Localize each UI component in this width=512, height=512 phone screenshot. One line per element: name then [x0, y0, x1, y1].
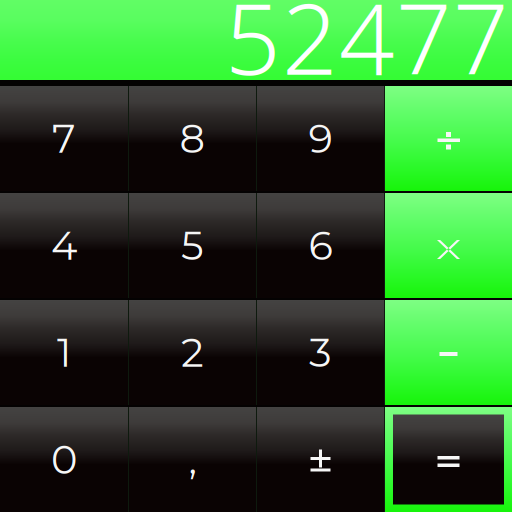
- button[interactable]: Plus minus: [257, 407, 384, 512]
- button[interactable]: 6: [257, 193, 384, 298]
- staticText: 52477: [225, 0, 509, 102]
- staticText: 7: [52, 114, 76, 163]
- staticText: 5: [181, 221, 204, 270]
- staticText: 2: [181, 328, 204, 377]
- button[interactable]: 3: [257, 300, 384, 405]
- staticText: 9: [308, 114, 332, 163]
- button[interactable]: 9: [257, 86, 384, 191]
- staticText: 4: [51, 221, 77, 270]
- staticText: 1: [57, 328, 71, 377]
- button[interactable]: 7: [0, 86, 128, 191]
- button[interactable]: 1: [0, 300, 128, 405]
- button[interactable]: Multiply: [385, 193, 512, 298]
- button[interactable]: Equals: [385, 407, 512, 512]
- staticText: ,: [188, 435, 196, 484]
- button[interactable]: 2: [129, 300, 256, 405]
- staticText: 3: [309, 328, 332, 377]
- button[interactable]: 8: [129, 86, 256, 191]
- button[interactable]: 0: [0, 407, 128, 512]
- button[interactable]: Subtract: [385, 300, 512, 405]
- button[interactable]: 4: [0, 193, 128, 298]
- staticText: 8: [179, 114, 205, 163]
- staticText: 0: [51, 435, 77, 484]
- button[interactable]: Divide: [385, 86, 512, 191]
- staticText: 6: [308, 221, 332, 270]
- button[interactable]: 5: [129, 193, 256, 298]
- button[interactable]: ,: [129, 407, 256, 512]
